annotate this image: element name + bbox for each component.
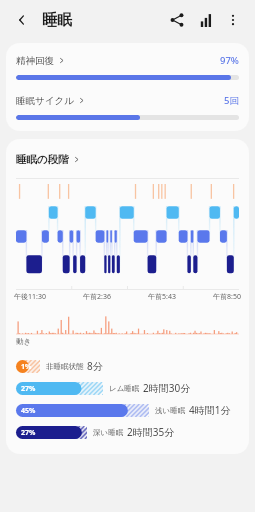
staticText: 27% [21,384,36,394]
button[interactable]: More options [220,7,246,33]
staticText: 睡眠の段階 [16,153,69,166]
button[interactable]: 精神回復 [16,54,239,80]
button[interactable]: 1% [6,359,249,373]
staticText: 4時間1分 [189,403,231,417]
button[interactable]: 睡眠の段階 [6,139,249,178]
staticText: 2時間35分 [127,425,175,439]
staticText: 97% [220,54,239,67]
button[interactable]: Back [9,7,35,33]
staticText: 27% [21,428,36,438]
button[interactable]: 睡眠サイクル [16,94,239,120]
staticText: 午前2:36 [83,292,111,302]
button[interactable]: Statistics [193,7,219,33]
staticText: 午前5:43 [148,292,176,302]
staticText: 睡眠サイクル [16,95,74,107]
button[interactable]: 45% [6,403,249,417]
staticText: 精神回復 [16,55,54,67]
staticText: 睡眠 [42,11,72,30]
staticText: レム睡眠 [109,384,140,393]
staticText: 8分 [87,359,103,373]
staticText: 午後11:30 [14,292,46,302]
staticText: 1% [21,362,32,372]
button[interactable]: Share [164,7,190,33]
staticText: 5回 [224,94,239,107]
staticText: 非睡眠状態 [46,362,84,371]
staticText: 午前8:50 [213,292,241,302]
button[interactable]: 27% [6,381,249,395]
staticText: 45% [21,406,36,416]
staticText: 2時間30分 [143,381,191,395]
staticText: 浅い睡眠 [155,406,186,415]
staticText: 動き [16,337,32,346]
staticText: 深い睡眠 [93,428,124,437]
button[interactable]: 27% [6,425,249,439]
